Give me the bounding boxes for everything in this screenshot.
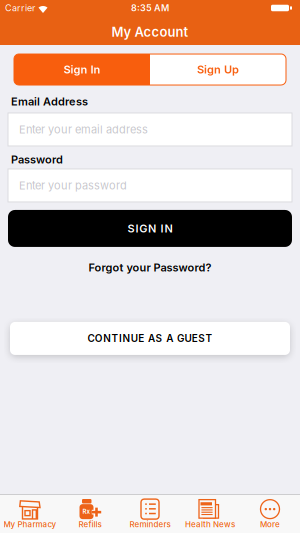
button[interactable]: Sign Up [150,54,286,85]
staticText: My Account [111,24,188,40]
staticText: Sign Up [197,63,239,76]
button[interactable]: My Pharmacy [0,499,60,529]
button[interactable]: Sign In [14,54,150,85]
staticText: SIGN IN [128,222,172,235]
staticText: My Pharmacy [3,520,56,529]
staticText: Forgot your Password? [88,261,211,274]
button[interactable]: More [240,499,300,529]
button[interactable]: Forgot your Password? [88,261,211,274]
staticText: Enter your email address [19,123,148,136]
button[interactable]: Health News [180,499,240,529]
staticText: Rx [82,508,89,515]
button[interactable]: Reminders [120,499,180,529]
staticText: Reminders [129,520,170,529]
staticText: Refills [78,520,101,529]
staticText: 8:35 AM [131,3,169,13]
button[interactable]: Rx [60,499,120,529]
staticText: CONTINUE AS A GUEST [87,332,213,344]
button[interactable]: CONTINUE AS A GUEST [10,322,290,355]
staticText: Sign In [63,63,100,76]
button[interactable]: SIGN IN [8,210,292,247]
staticText: Email Address [11,95,88,108]
staticText: More [260,520,280,529]
staticText: Enter your password [19,179,127,192]
staticText: Password [11,153,63,166]
staticText: Health News [185,520,235,529]
staticText: Carrier [5,3,35,13]
